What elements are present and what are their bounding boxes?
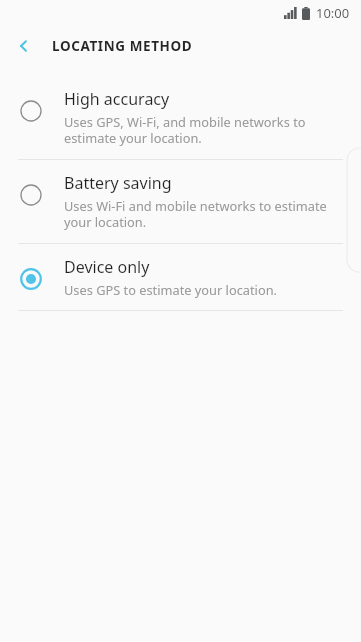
staticText: High accuracy	[64, 88, 170, 110]
button[interactable]: High accuracy	[0, 76, 361, 159]
staticText: Battery saving	[64, 172, 172, 194]
button[interactable]: Battery saving	[0, 160, 361, 243]
staticText: Uses GPS, Wi-Fi, and mobile networks to …	[64, 113, 306, 147]
staticText: LOCATING METHOD	[52, 37, 193, 55]
staticText: Device only	[64, 256, 150, 278]
button[interactable]: Back	[8, 30, 40, 62]
staticText: Uses Wi-Fi and mobile networks to estima…	[64, 197, 327, 231]
button[interactable]: Device only	[0, 244, 361, 310]
staticText: Uses GPS to estimate your location.	[64, 281, 277, 298]
staticText: 10:00	[316, 4, 350, 22]
